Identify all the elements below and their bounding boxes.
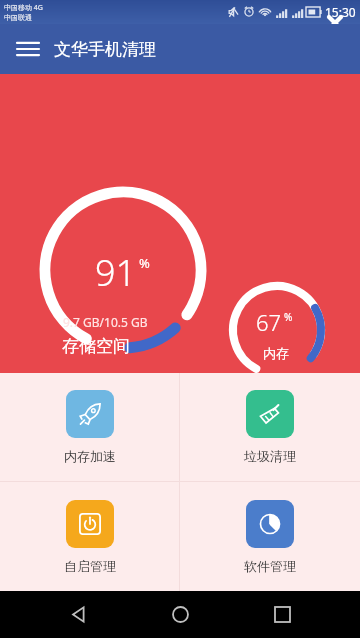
button[interactable]: 内存加速 xyxy=(0,373,179,481)
staticText: 9.7 GB/10.5 GB xyxy=(63,314,148,330)
staticText: 自启管理 xyxy=(64,558,116,574)
staticText: % xyxy=(139,254,150,272)
staticText: 中国移动 4G xyxy=(4,3,43,13)
staticText: 文华手机清理 xyxy=(54,39,156,60)
staticText: 垃圾清理 xyxy=(244,448,296,464)
button[interactable]: Menu xyxy=(10,31,46,67)
staticText: 中国联通 xyxy=(4,13,32,22)
button[interactable]: Recents xyxy=(258,591,306,638)
button[interactable]: Back xyxy=(54,591,102,638)
button[interactable]: 垃圾清理 xyxy=(180,373,360,481)
button[interactable]: 软件管理 xyxy=(180,482,360,591)
button[interactable]: Home xyxy=(156,591,204,638)
staticText: 存储空间 xyxy=(62,336,130,357)
staticText: 15:30 xyxy=(325,4,356,20)
staticText: 内存加速 xyxy=(64,448,116,464)
button[interactable]: 自启管理 xyxy=(0,482,179,591)
staticText: 软件管理 xyxy=(244,558,296,574)
staticText: 67 xyxy=(256,307,282,337)
staticText: % xyxy=(284,310,293,324)
staticText: 内存 xyxy=(263,345,289,361)
staticText: 91 xyxy=(95,248,137,297)
